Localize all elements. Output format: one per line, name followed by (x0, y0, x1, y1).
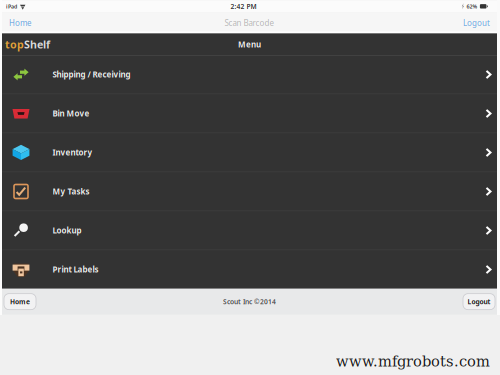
staticText: Bin Move (52, 108, 89, 119)
button[interactable]: Home (4, 294, 36, 310)
staticText: 62% (466, 3, 477, 10)
staticText: Lookup (52, 225, 81, 236)
staticText: 2:42 PM (230, 2, 256, 11)
staticText: Logout (467, 297, 490, 306)
staticText: Inventory (52, 147, 92, 158)
button[interactable]: Logout (460, 12, 493, 33)
staticText: Scout Inc ©2014 (223, 297, 276, 306)
staticText: Print Labels (52, 264, 98, 275)
button[interactable]: My Tasks (2, 172, 497, 211)
staticText: Menu (238, 39, 261, 50)
staticText: www.mfgrobots.com (336, 353, 490, 370)
button[interactable]: Home (6, 12, 35, 33)
staticText: Home (10, 297, 30, 306)
staticText: Scan Barcode (224, 17, 274, 28)
button[interactable]: Lookup (2, 211, 497, 250)
button[interactable]: Shipping / Receiving (2, 55, 497, 94)
staticText: Logout (463, 17, 490, 28)
staticText: Home (9, 17, 32, 28)
staticText: iPad (6, 3, 17, 10)
staticText: My Tasks (52, 186, 89, 197)
button[interactable]: Inventory (2, 133, 497, 172)
button[interactable]: Logout (463, 294, 495, 310)
button[interactable]: Bin Move (2, 94, 497, 133)
button[interactable]: Print Labels (2, 250, 497, 289)
staticText: Shipping / Receiving (52, 69, 130, 80)
staticText: Shelf (24, 37, 50, 51)
staticText: top (5, 37, 24, 51)
